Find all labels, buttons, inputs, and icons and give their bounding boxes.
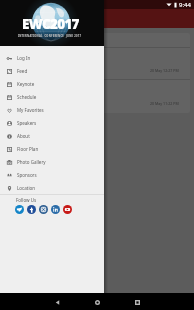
button[interactable]: Floor Plan <box>0 142 104 155</box>
staticText: My Favorites <box>17 107 44 113</box>
staticText: Schedule <box>17 94 37 100</box>
staticText: Photo Gallery <box>17 159 46 165</box>
button[interactable]: Keynote <box>0 77 104 90</box>
button[interactable]: Sponsors <box>0 168 104 181</box>
staticText: Feed <box>17 68 28 74</box>
button[interactable]: 20 May 12:27 PM <box>4 48 190 79</box>
button[interactable]: About <box>0 129 104 142</box>
button[interactable]: Back <box>50 295 64 309</box>
button[interactable]: Recents <box>130 295 144 309</box>
staticText: 20 May 11:22 PM <box>150 101 179 106</box>
button[interactable]: 20 May 11:22 PM <box>4 80 190 113</box>
button[interactable]: Log In <box>0 51 104 64</box>
button[interactable]: Photo Gallery <box>0 155 104 168</box>
staticText: INTERNATIONAL CONFERENCE JUNE 2017 <box>18 34 82 38</box>
button[interactable]: YouTube <box>63 205 72 214</box>
button[interactable]: My Favorites <box>0 103 104 116</box>
button[interactable]: Feed <box>0 64 104 77</box>
button[interactable]: Speakers <box>0 116 104 129</box>
button[interactable]: Schedule <box>0 90 104 103</box>
button[interactable]: Location <box>0 181 104 194</box>
staticText: Follow Us <box>16 197 37 203</box>
button[interactable]: Facebook <box>27 205 36 214</box>
staticText: Sponsors <box>17 172 37 178</box>
staticText: Floor Plan <box>17 146 39 152</box>
staticText: Location <box>17 185 36 191</box>
staticText: EWC2017 <box>22 15 79 33</box>
button[interactable]: Twitter <box>15 205 24 214</box>
button[interactable]: LinkedIn <box>51 205 60 214</box>
staticText: 9:44 <box>179 1 191 9</box>
staticText: Log In <box>17 55 31 61</box>
staticText: Speakers <box>17 120 37 126</box>
button[interactable]: Home <box>90 295 104 309</box>
staticText: About <box>17 133 30 139</box>
staticText: Keynote <box>17 81 35 87</box>
button[interactable]: Instagram <box>39 205 48 214</box>
staticText: 20 May 12:27 PM <box>150 68 179 73</box>
